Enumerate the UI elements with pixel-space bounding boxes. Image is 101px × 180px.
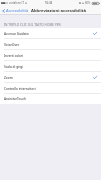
other: Selezionato [93,32,97,35]
staticText: Accesso Guidato [4,32,29,36]
staticText: IN TRIPLO CLIC SUL TASTO HOME PER: [4,23,62,27]
button[interactable]: Controllo interruttori [0,83,101,94]
button[interactable]: VoiceOver [0,39,101,50]
staticText: VoiceOver [4,43,20,47]
staticText: AssistiveTouch [4,97,26,101]
staticText: 80% [85,1,91,5]
other: Indietro [2,9,5,13]
button[interactable]: AssistiveTouch [0,94,101,104]
button[interactable]: Indietro [0,8,31,13]
button[interactable]: Inverti colori [0,50,101,61]
button[interactable]: Accesso Guidato [0,28,101,39]
staticText: Controllo interruttori [4,87,36,91]
button[interactable]: Zoom [0,72,101,83]
button[interactable]: Scala di grigi [0,61,101,72]
other: Selezionato [93,76,97,79]
staticText: Abbreviazioni accessibilità [31,8,87,14]
staticText: Accessibilità [6,8,29,13]
staticText: Inverti colori [4,54,24,58]
staticText: Zoom [4,76,13,80]
staticText: Scala di grigi [4,65,24,69]
staticText: 16:34 [45,1,53,5]
staticText: vodafone IT [9,1,24,5]
